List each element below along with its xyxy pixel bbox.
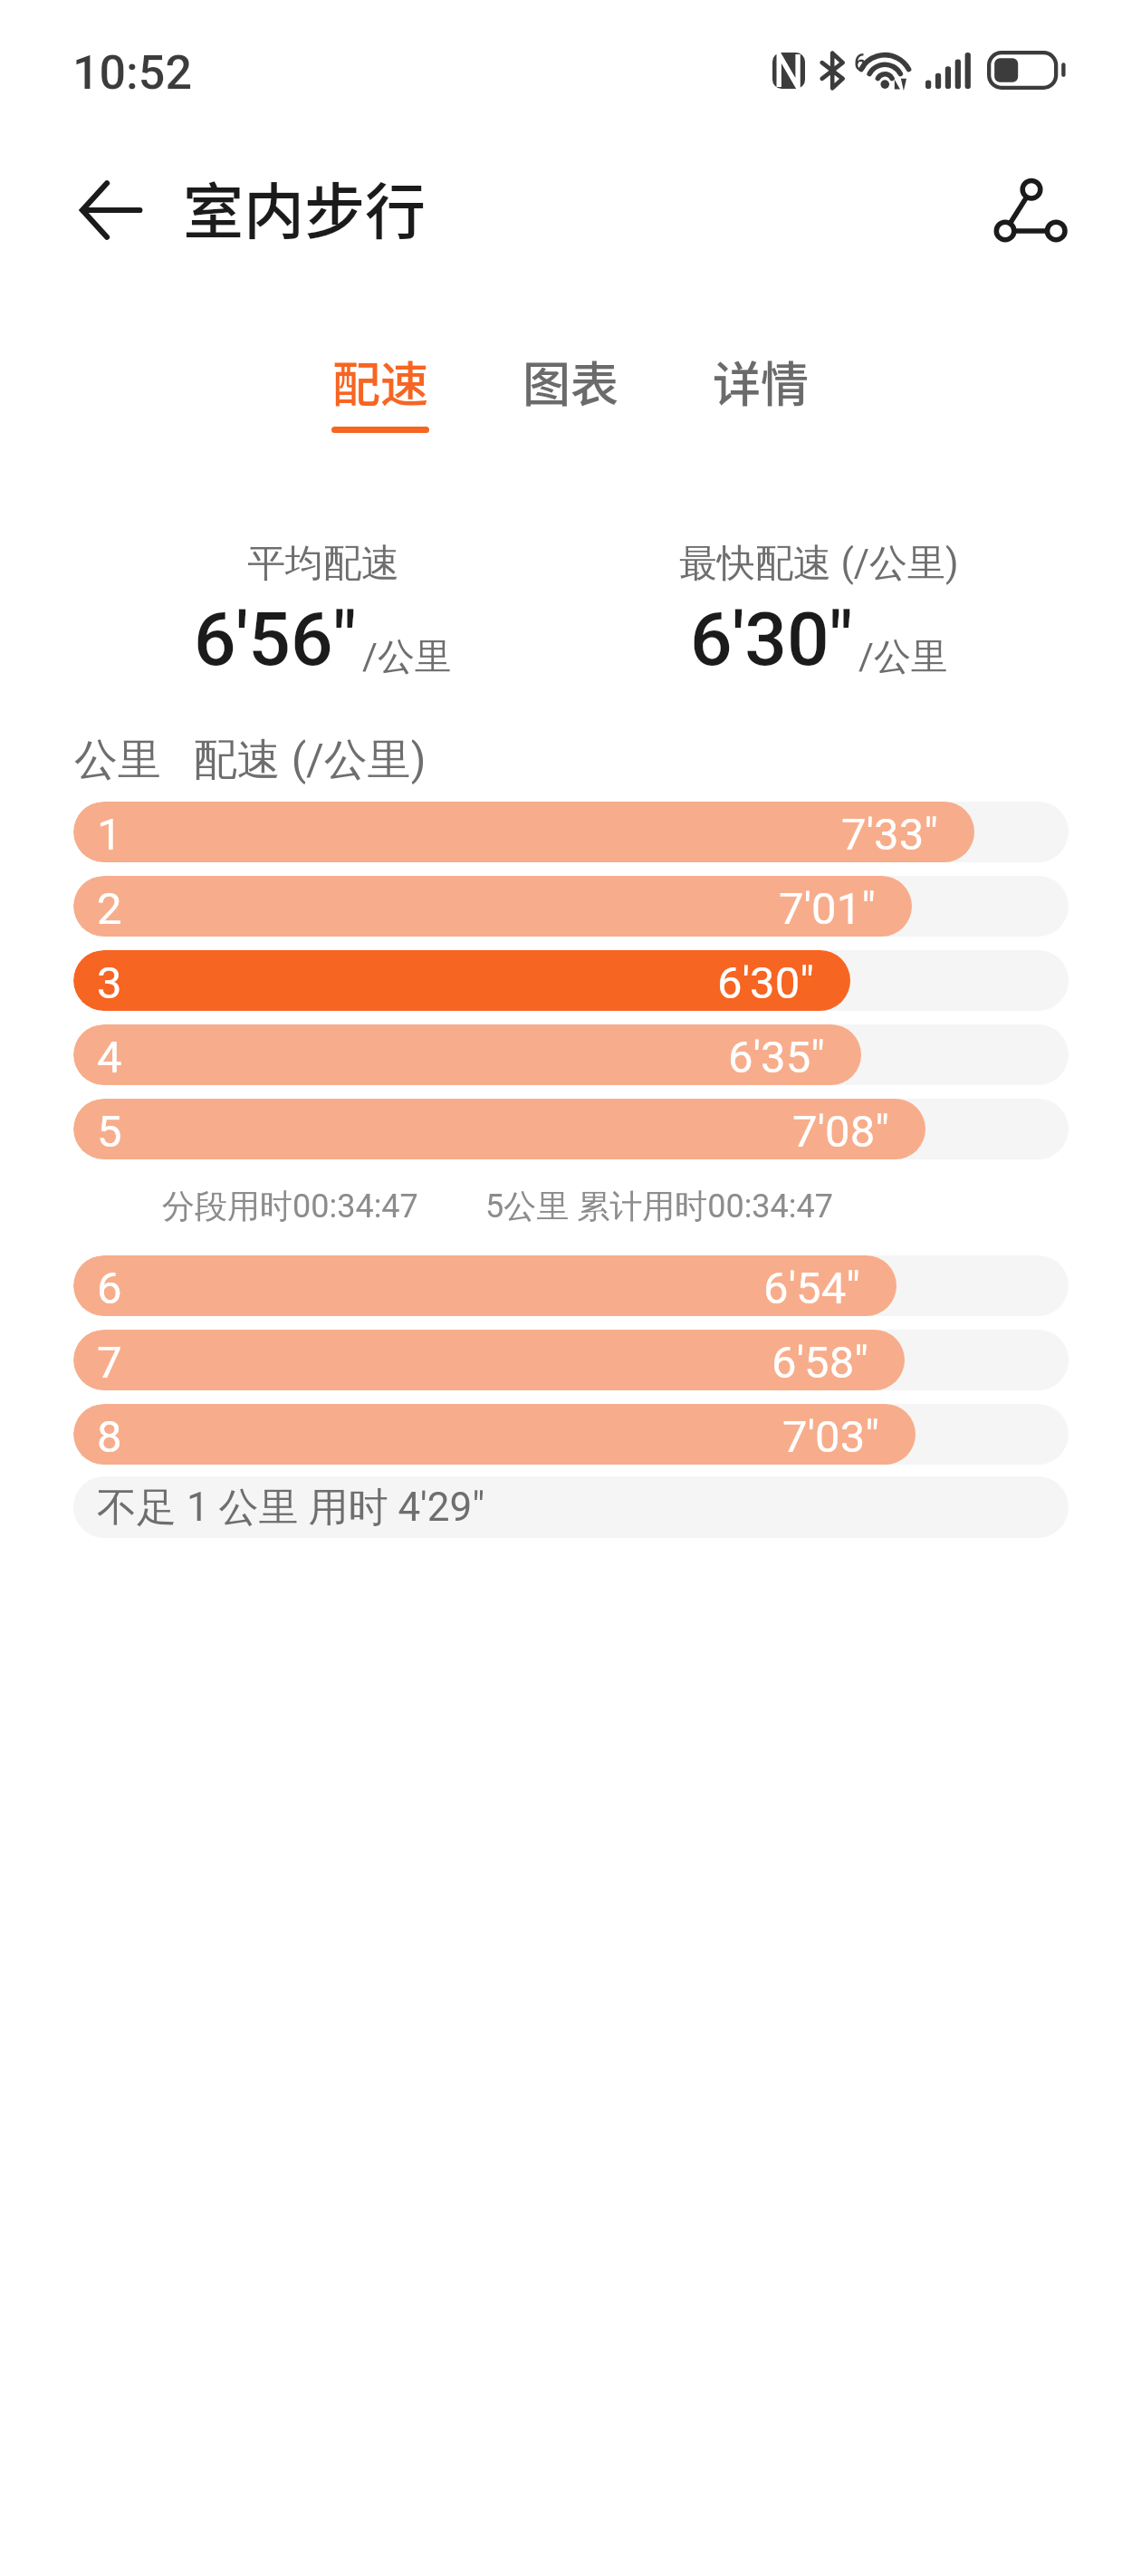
staticText: 公里 配速 (/公里) <box>74 733 427 787</box>
staticText: 分段用时00:34:47 <box>162 1186 418 1226</box>
staticText: 8 <box>97 1411 122 1463</box>
staticText: 7'01" <box>779 883 876 935</box>
staticText: 详情 <box>713 347 809 417</box>
button[interactable]: 6 <box>73 1255 1069 1316</box>
staticText: 5公里 累计用时00:34:47 <box>485 1186 833 1226</box>
staticText: 4 <box>97 1032 122 1083</box>
staticText: 6 <box>854 50 868 76</box>
staticText: /公里 <box>362 634 452 681</box>
button[interactable]: 配速 <box>299 347 462 456</box>
staticText: 7'33" <box>841 809 938 860</box>
button[interactable]: 不足 1 公里 用时 4'29" <box>73 1476 1069 1538</box>
button[interactable]: 3 <box>73 950 1069 1011</box>
button[interactable]: 1 <box>73 802 1069 862</box>
staticText: 2 <box>97 883 122 935</box>
button[interactable]: 详情 <box>679 347 842 456</box>
button[interactable]: 2 <box>73 876 1069 937</box>
staticText: 1 <box>97 809 122 860</box>
button[interactable]: 图表 <box>489 347 652 456</box>
staticText: 最快配速 (/公里) <box>679 540 959 588</box>
staticText: 图表 <box>523 347 618 417</box>
button[interactable]: 7 <box>73 1330 1069 1390</box>
staticText: 6'56" <box>194 596 357 683</box>
staticText: 不足 1 公里 用时 4'29" <box>97 1483 485 1533</box>
staticText: 7 <box>97 1337 122 1389</box>
button[interactable]: Share <box>972 154 1088 266</box>
staticText: 7'03" <box>782 1411 879 1463</box>
button[interactable]: Back <box>53 154 168 266</box>
staticText: 7'08" <box>792 1106 889 1158</box>
staticText: 3 <box>97 957 122 1009</box>
staticText: 6'30" <box>717 957 814 1009</box>
staticText: 6'30" <box>690 596 853 683</box>
staticText: 室内步行 <box>183 163 426 251</box>
staticText: 平均配速 <box>247 540 399 588</box>
staticText: 10:52 <box>72 45 192 101</box>
staticText: /公里 <box>858 634 948 681</box>
staticText: 6'54" <box>763 1263 860 1314</box>
staticText: 6 <box>97 1263 122 1314</box>
staticText: 5 <box>97 1106 122 1158</box>
button[interactable]: 8 <box>73 1404 1069 1465</box>
staticText: 6'58" <box>772 1337 868 1389</box>
staticText: 6'35" <box>728 1032 825 1083</box>
button[interactable]: 4 <box>73 1024 1069 1085</box>
button[interactable]: 5 <box>73 1099 1069 1159</box>
staticText: 配速 <box>332 347 428 417</box>
